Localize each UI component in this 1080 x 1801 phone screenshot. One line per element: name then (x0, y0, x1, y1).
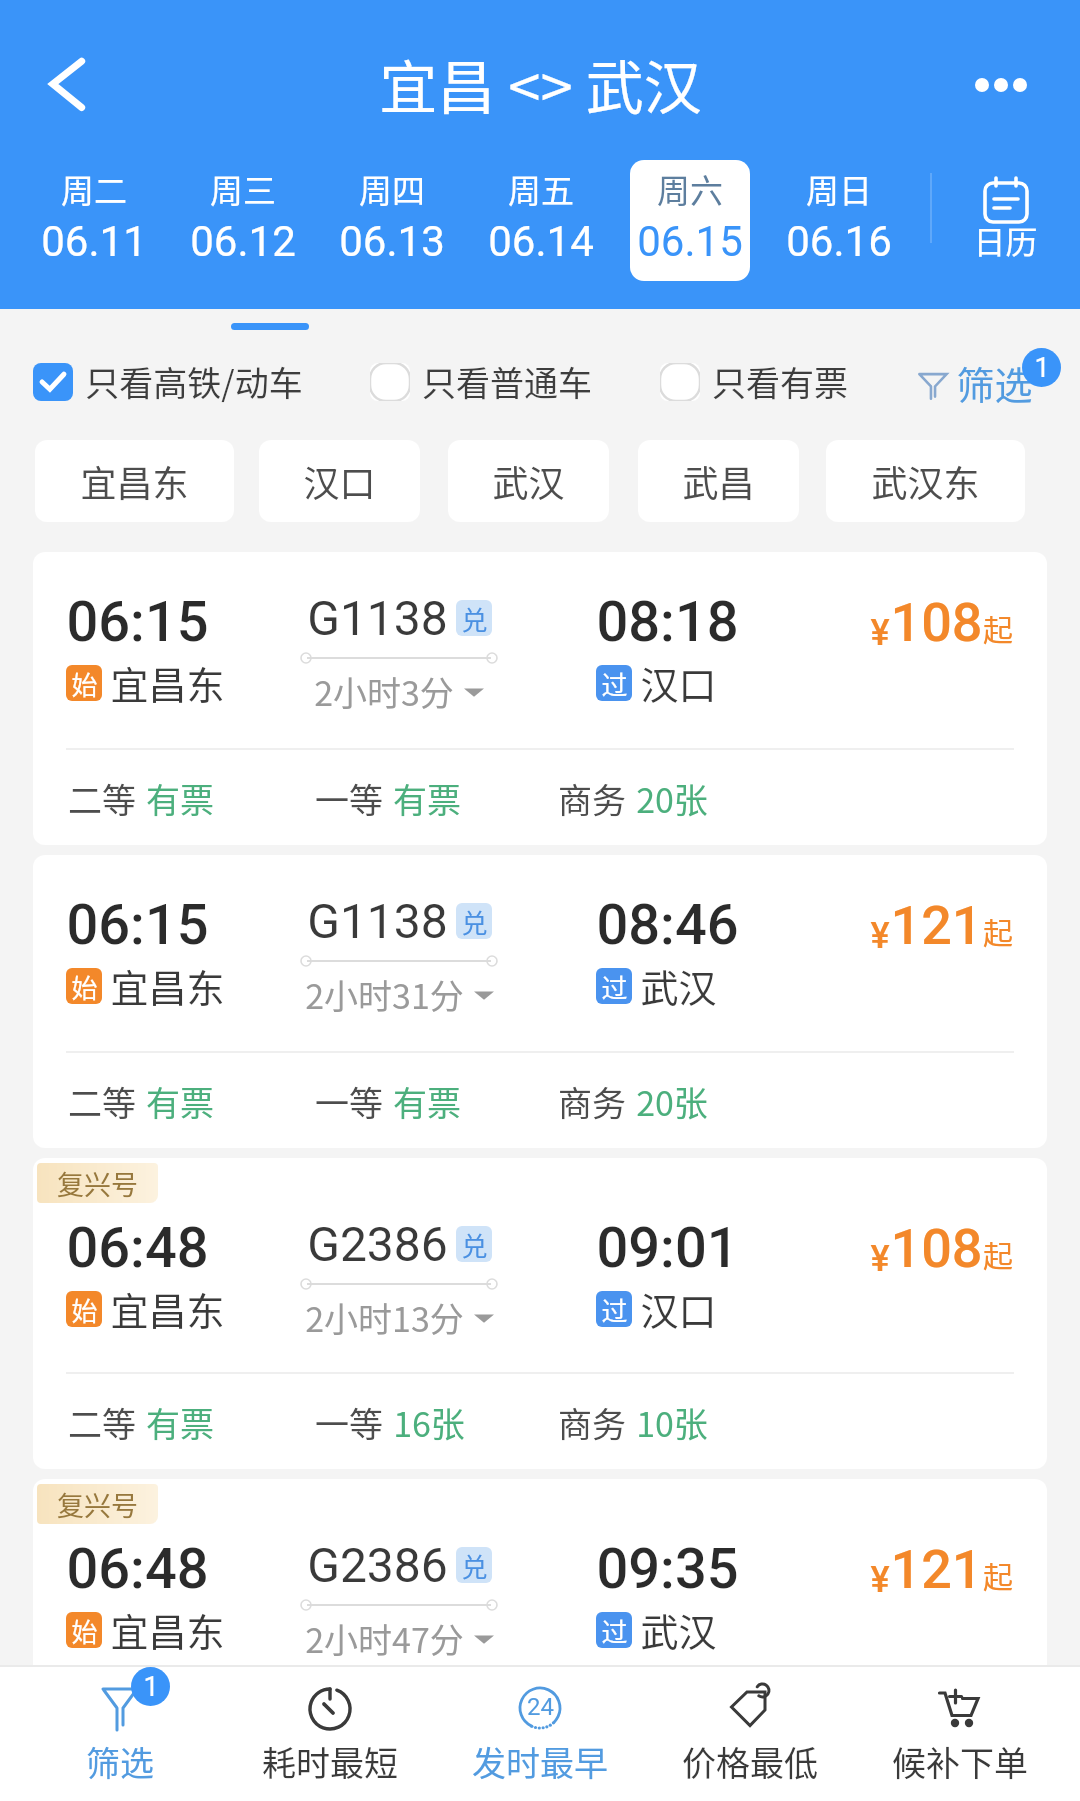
staticText: 10张 (636, 1719, 708, 1768)
staticText: 16张 (393, 1398, 465, 1447)
staticText: 宜昌东 (110, 1602, 225, 1657)
button[interactable]: 宜昌东 (35, 440, 234, 522)
staticText: 始 (71, 665, 98, 701)
button[interactable]: 复兴号 (33, 1158, 1047, 1469)
button[interactable]: More options (965, 50, 1045, 130)
staticText: 商务 (558, 1398, 626, 1447)
staticText: 宜昌东 (110, 958, 225, 1013)
staticText: 日历 (973, 217, 1038, 263)
staticText: 06.11 (41, 217, 147, 266)
staticText: 兑 (461, 600, 488, 636)
button[interactable]: 武汉东 (826, 440, 1025, 522)
button[interactable]: 复兴号 (33, 1479, 1047, 1790)
staticText: 价格最低 (682, 1737, 818, 1786)
staticText: 有票 (146, 1398, 214, 1447)
staticText: 08:46 (596, 892, 739, 958)
staticText: 有票 (146, 1077, 214, 1126)
staticText: 只看有票 (712, 357, 848, 406)
button[interactable]: 只看高铁/动车 (33, 357, 303, 406)
staticText: 耗时最短 (262, 1737, 398, 1786)
staticText: 始 (71, 1612, 98, 1648)
staticText: ¥ (870, 915, 890, 957)
staticText: 24 (527, 1693, 554, 1721)
staticText: 复兴号 (57, 1485, 138, 1524)
button[interactable]: 筛选 (916, 355, 1033, 410)
staticText: 周六 (657, 165, 723, 213)
staticText: 121 (890, 1538, 983, 1601)
button[interactable]: Back (30, 46, 106, 122)
staticText: 商务 (558, 1077, 626, 1126)
button[interactable]: 周五 (481, 160, 601, 281)
staticText: 06:48 (66, 1536, 209, 1602)
staticText: 汉口 (640, 1281, 717, 1336)
staticText: 2小时31分 (305, 970, 464, 1019)
staticText: 起 (983, 1232, 1013, 1275)
button[interactable]: 06:15 (33, 552, 1047, 845)
button[interactable]: 只看普通车 (370, 357, 592, 406)
staticText: 06.14 (488, 217, 594, 266)
button[interactable]: 周日 (779, 160, 899, 281)
button[interactable]: 价格最低 (642, 1667, 858, 1801)
staticText: 始 (71, 968, 98, 1004)
staticText: 兑 (461, 1547, 488, 1583)
staticText: 武汉东 (871, 455, 980, 507)
staticText: 发时最早 (472, 1737, 608, 1786)
staticText: 一等 (315, 1077, 383, 1126)
staticText: 候补下单 (892, 1737, 1028, 1786)
staticText: 只看高铁/动车 (85, 357, 303, 406)
button[interactable]: 周六 (630, 160, 750, 281)
staticText: 1 (143, 1671, 159, 1703)
button[interactable]: 汉口 (259, 440, 420, 522)
button[interactable]: 候补下单 (852, 1667, 1068, 1801)
button[interactable]: 耗时最短 (222, 1667, 438, 1801)
button[interactable]: 周四 (332, 160, 452, 281)
button[interactable]: 日历 (950, 163, 1060, 284)
staticText: 商务 (558, 1719, 626, 1768)
staticText: 20张 (636, 1077, 708, 1126)
staticText: 二等 (68, 1398, 136, 1447)
staticText: 2小时13分 (305, 1293, 464, 1342)
staticText: 有票 (146, 1719, 214, 1768)
staticText: 宜昌东 (80, 455, 189, 507)
staticText: G1138 (307, 893, 448, 949)
staticText: 商务 (558, 774, 626, 823)
staticText: 06:15 (66, 589, 209, 655)
button[interactable]: 06:15 (33, 855, 1047, 1148)
staticText: 过 (601, 665, 628, 701)
staticText: 宜昌 <> 武汉 (379, 42, 702, 126)
staticText: 周三 (210, 165, 276, 213)
staticText: 宜昌东 (110, 1281, 225, 1336)
staticText: 06:48 (66, 1215, 209, 1281)
staticText: 1 (1034, 352, 1050, 384)
staticText: 只看普通车 (422, 357, 592, 406)
button[interactable]: 周二 (34, 160, 154, 281)
button[interactable]: 只看有票 (660, 357, 848, 406)
staticText: 09:01 (596, 1215, 739, 1281)
staticText: G2386 (307, 1216, 448, 1272)
staticText: 108 (890, 591, 983, 654)
staticText: 始 (71, 1291, 98, 1327)
staticText: 武汉 (640, 1602, 717, 1657)
button[interactable]: 24 (432, 1667, 648, 1801)
staticText: 过 (601, 1612, 628, 1648)
staticText: 有票 (146, 774, 214, 823)
staticText: 起 (983, 909, 1013, 952)
staticText: 起 (983, 606, 1013, 649)
staticText: 周四 (359, 165, 425, 213)
button[interactable]: 1 (12, 1667, 228, 1801)
staticText: 10张 (636, 1398, 708, 1447)
button[interactable]: 周三 (183, 160, 303, 281)
staticText: 06.12 (190, 217, 296, 266)
staticText: 筛选 (956, 355, 1033, 410)
staticText: 武昌 (682, 455, 755, 507)
button[interactable]: 武昌 (638, 440, 799, 522)
staticText: 二等 (68, 1077, 136, 1126)
staticText: 一等 (315, 1719, 383, 1768)
staticText: 06:15 (66, 892, 209, 958)
staticText: 过 (601, 968, 628, 1004)
staticText: 20张 (636, 774, 708, 823)
staticText: 08:18 (596, 589, 739, 655)
staticText: 武汉 (492, 455, 565, 507)
button[interactable]: 武汉 (448, 440, 609, 522)
staticText: 06.16 (786, 217, 892, 266)
